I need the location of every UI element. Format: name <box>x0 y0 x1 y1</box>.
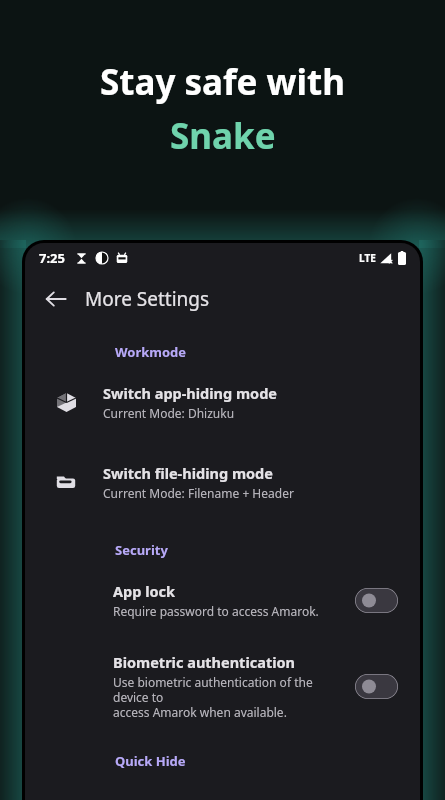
staticText: More Settings <box>85 286 210 312</box>
button[interactable]: Back <box>35 278 77 320</box>
staticText: Biometric authentication <box>113 652 296 672</box>
button[interactable]: App lock <box>25 579 420 621</box>
button[interactable]: Toggle <box>355 588 398 613</box>
staticText: App lock <box>113 581 175 601</box>
button[interactable]: Switch app-hiding mode <box>25 379 420 425</box>
staticText: Workmode <box>115 343 187 361</box>
staticText: Switch file-hiding mode <box>103 463 273 483</box>
staticText: Current Mode: Dhizuku <box>103 405 235 421</box>
staticText: Require password to access Amarok. <box>113 603 319 619</box>
staticText: Stay safe with <box>100 58 345 106</box>
button[interactable]: Switch file-hiding mode <box>25 459 420 505</box>
button[interactable]: Biometric authentication <box>25 650 420 722</box>
staticText: Quick Hide <box>115 752 186 770</box>
button[interactable]: Toggle <box>355 674 398 699</box>
staticText: Security <box>115 541 168 559</box>
staticText: Snake <box>170 112 276 160</box>
staticText: Current Mode: Filename + Header <box>103 485 294 501</box>
staticText: LTE <box>359 251 376 265</box>
staticText: Use biometric authentication of the devi… <box>113 674 345 720</box>
staticText: Switch app-hiding mode <box>103 383 277 403</box>
staticText: 7:25 <box>39 249 65 267</box>
